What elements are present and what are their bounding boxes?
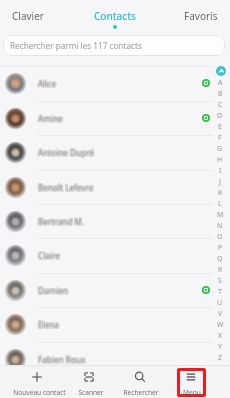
staticText: Bertrand M.: [38, 216, 84, 227]
staticText: Damien: [38, 284, 69, 295]
staticText: Elena: [39, 318, 60, 329]
button[interactable]: Benoît Lefevre: [0, 170, 230, 204]
staticText: Bertrand M.: [38, 217, 84, 228]
staticText: Benoît Lefevre: [37, 182, 93, 193]
button[interactable]: Alice: [0, 66, 230, 100]
staticText: Antoine Dupré: [37, 148, 94, 159]
button[interactable]: Antoine Dupré: [0, 135, 230, 169]
staticText: Damien: [38, 285, 69, 296]
staticText: S: [218, 276, 222, 286]
staticText: Benoît Lefevre: [39, 182, 95, 193]
staticText: E: [218, 122, 222, 132]
staticText: Alice: [37, 77, 56, 88]
staticText: Amine: [39, 112, 64, 123]
staticText: Alice: [38, 79, 57, 90]
button[interactable]: Damien: [0, 273, 230, 307]
staticText: Amine: [38, 112, 63, 123]
staticText: Amine: [37, 114, 62, 125]
staticText: Benoît Lefevre: [39, 181, 95, 192]
staticText: Bertrand M.: [38, 215, 84, 226]
staticText: Alice: [39, 79, 58, 90]
button[interactable]: Fabien Roux: [0, 342, 230, 376]
staticText: Amine: [38, 114, 63, 125]
staticText: Antoine Dupré: [39, 148, 96, 159]
staticText: Claire: [39, 250, 61, 261]
staticText: N: [217, 221, 223, 231]
staticText: Fabien Roux: [38, 353, 86, 364]
staticText: A: [218, 78, 223, 88]
staticText: Amine: [39, 114, 64, 125]
staticText: Rechercher: [123, 388, 159, 397]
staticText: Elena: [37, 318, 58, 329]
button[interactable]: Scanner: [63, 366, 114, 398]
staticText: Florent: [37, 389, 65, 398]
staticText: L: [218, 199, 222, 209]
staticText: Fabien Roux: [38, 355, 86, 366]
staticText: Bertrand M.: [37, 217, 83, 228]
staticText: Z: [218, 353, 223, 363]
button[interactable]: Clavier: [0, 0, 56, 31]
staticText: Benoît Lefevre: [37, 183, 93, 194]
staticText: Antoine Dupré: [37, 146, 94, 157]
staticText: Florent: [39, 389, 67, 398]
staticText: Claire: [37, 249, 59, 260]
staticText: D: [217, 111, 223, 121]
button[interactable]: Menu: [165, 366, 216, 398]
staticText: Alice: [38, 77, 57, 88]
staticText: Damien: [37, 284, 68, 295]
staticText: V: [218, 309, 223, 319]
staticText: Claire: [38, 250, 60, 261]
staticText: Claire: [37, 250, 59, 261]
button[interactable]: Elena: [0, 307, 230, 341]
button[interactable]: Favoris: [172, 0, 230, 31]
staticText: K: [218, 188, 223, 198]
staticText: H: [217, 155, 223, 165]
staticText: G: [217, 144, 223, 154]
staticText: Florent: [38, 389, 66, 398]
button[interactable]: Florent: [0, 376, 230, 398]
staticText: Alice: [37, 79, 56, 90]
staticText: Scanner: [78, 388, 104, 397]
staticText: Florent: [37, 388, 65, 398]
staticText: Alice: [39, 78, 58, 89]
staticText: Damien: [37, 285, 68, 296]
staticText: M: [217, 210, 224, 220]
button[interactable]: Amine: [0, 101, 230, 135]
button[interactable]: Claire: [0, 238, 230, 272]
staticText: Elena: [38, 319, 59, 330]
button[interactable]: Rechercher: [114, 366, 165, 398]
staticText: Elena: [39, 319, 60, 330]
staticText: U: [217, 298, 223, 308]
staticText: Claire: [38, 249, 60, 260]
staticText: Fabien Roux: [39, 353, 87, 364]
staticText: Florent: [39, 387, 67, 398]
staticText: Florent: [38, 387, 66, 398]
staticText: Florent: [37, 387, 65, 398]
staticText: Antoine Dupré: [38, 147, 95, 158]
staticText: Nouveau contact: [13, 388, 66, 397]
staticText: Damien: [39, 286, 70, 297]
staticText: Florent: [38, 388, 66, 398]
staticText: Y: [218, 342, 222, 352]
staticText: Elena: [39, 320, 60, 331]
staticText: Elena: [38, 320, 59, 331]
staticText: Antoine Dupré: [38, 146, 95, 157]
button[interactable]: Rechercher parmi les 117 contacts: [3, 35, 225, 56]
staticText: B: [218, 89, 223, 99]
button[interactable]: Search by name: [216, 66, 226, 76]
button[interactable]: Contacts: [86, 0, 144, 31]
staticText: T: [218, 287, 222, 297]
button[interactable]: Nouveau contact: [11, 366, 62, 398]
staticText: Claire: [38, 251, 60, 262]
staticText: Fabien Roux: [38, 354, 86, 365]
staticText: Damien: [39, 284, 70, 295]
staticText: I: [219, 166, 222, 176]
staticText: Rechercher parmi les 117 contacts: [10, 40, 142, 51]
staticText: Claire: [39, 251, 61, 262]
staticText: Benoît Lefevre: [38, 183, 94, 194]
staticText: Antoine Dupré: [37, 147, 94, 158]
staticText: C: [218, 100, 223, 110]
staticText: X: [218, 331, 223, 341]
staticText: J: [219, 177, 221, 187]
button[interactable]: Bertrand M.: [0, 204, 230, 238]
